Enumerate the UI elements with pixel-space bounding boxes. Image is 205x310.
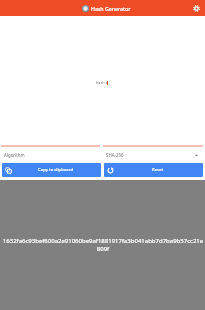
button[interactable]: Settings <box>191 3 202 14</box>
staticText: Reset <box>152 167 164 173</box>
staticText: Copy to clipboard <box>38 167 74 173</box>
staticText: SHA-256 <box>106 152 124 158</box>
staticText: hash it <box>96 80 108 85</box>
staticText: Algorithm <box>4 152 25 158</box>
staticText: 1632fa6c93bef600a2e91060be9af1881917fa3b… <box>2 237 204 253</box>
button[interactable]: Copy to clipboard <box>2 163 101 177</box>
staticText: Hash Generator <box>91 5 131 12</box>
button[interactable]: SHA-256 <box>103 152 203 158</box>
button[interactable]: Reset <box>104 163 203 177</box>
